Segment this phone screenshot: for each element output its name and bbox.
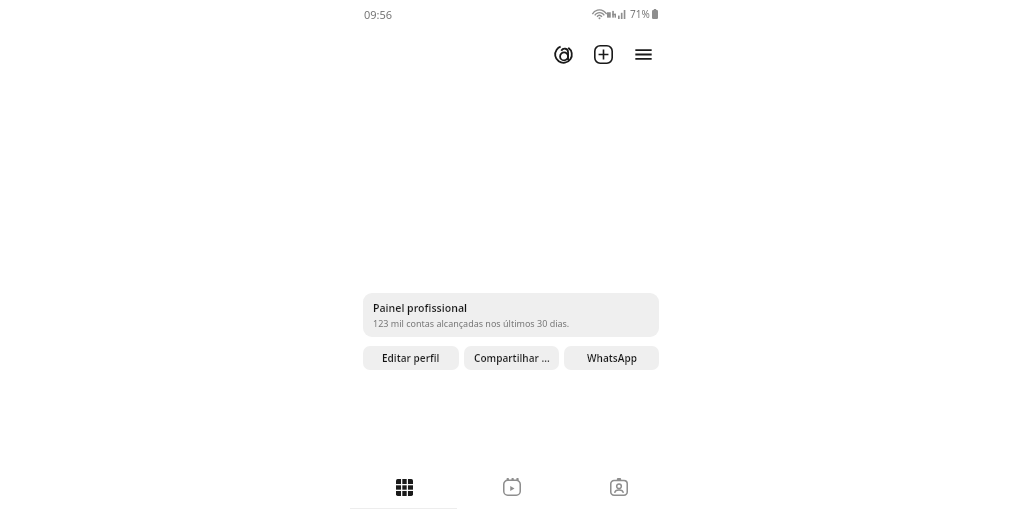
button[interactable]: Grid posts [350,466,458,508]
staticText: Compartilhar ... [474,351,550,365]
button[interactable]: Tagged [565,466,672,508]
button[interactable]: New post [588,39,618,69]
button[interactable]: Compartilhar ... [464,346,559,370]
staticText: Painel profissional [373,301,467,315]
button[interactable]: Menu [628,39,658,69]
staticText: 09:56 [364,7,393,22]
staticText: WhatsApp [587,351,637,365]
staticText: Editar perfil [382,351,440,365]
staticText: 71% [630,7,650,21]
button[interactable]: Reels [458,466,565,508]
button[interactable]: WhatsApp [564,346,659,370]
staticText: 123 mil contas alcançadas nos últimos 30… [373,317,570,329]
button[interactable]: Editar perfil [363,346,459,370]
button[interactable]: Threads [548,39,578,69]
button[interactable]: Painel profissional [363,293,659,337]
